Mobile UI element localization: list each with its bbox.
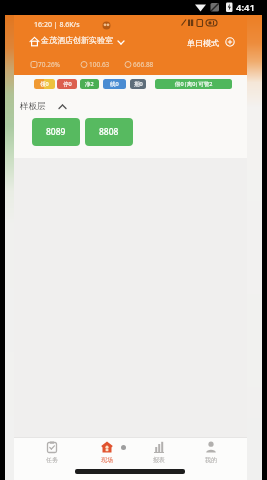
staticText: 样板层 — [20, 101, 46, 112]
button[interactable]: 净2 — [80, 79, 99, 89]
button[interactable]: 8089 — [32, 118, 80, 146]
button[interactable]: 领0 — [34, 79, 55, 89]
button[interactable]: 我的 — [197, 439, 225, 480]
staticText: 666.88 — [133, 60, 154, 69]
button[interactable]: 期0 — [130, 79, 146, 89]
button[interactable]: 8808 — [85, 118, 133, 146]
staticText: 停0 — [63, 80, 72, 88]
button[interactable]: 假0|离0|可警2 — [155, 79, 232, 89]
staticText: 报表 — [153, 456, 165, 464]
staticText: 领0 — [40, 80, 49, 88]
button[interactable]: 现场 — [93, 439, 121, 480]
staticText: 期0 — [134, 80, 143, 88]
staticText: 金茂酒店创新实验室 — [41, 35, 113, 45]
staticText: 8808 — [99, 126, 119, 138]
staticText: 任务 — [46, 456, 58, 464]
button[interactable]: 报表 — [145, 439, 173, 480]
staticText: 现场 — [101, 456, 113, 464]
button[interactable]: 任务 — [38, 439, 66, 480]
staticText: 8089 — [46, 126, 66, 138]
button[interactable]: 停0 — [57, 79, 77, 89]
staticText: 单日模式 — [187, 38, 219, 48]
staticText: 16:20 | 8.6K/s — [34, 20, 80, 30]
staticText: 我的 — [205, 456, 217, 464]
staticText: 70.26% — [38, 60, 61, 69]
staticText: 线0 — [110, 80, 119, 88]
button[interactable]: 单日模式 — [187, 35, 237, 50]
staticText: 4:41 — [236, 1, 255, 13]
staticText: 100.63 — [89, 60, 110, 69]
button[interactable]: 线0 — [103, 79, 126, 89]
staticText: 假0|离0|可警2 — [175, 80, 213, 88]
staticText: 净2 — [85, 80, 94, 88]
